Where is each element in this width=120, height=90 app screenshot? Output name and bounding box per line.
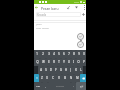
button[interactable]: 5: [56, 50, 61, 58]
button[interactable]: Y: [61, 58, 66, 66]
staticText: 4: [53, 52, 55, 56]
button[interactable]: 4: [51, 50, 56, 58]
button[interactable]: Add recipient: [81, 12, 86, 17]
button[interactable]: .: [71, 82, 76, 90]
staticText: U: [68, 60, 70, 64]
staticText: I: [73, 60, 74, 64]
button[interactable]: T: [56, 58, 61, 66]
button[interactable]: K: [73, 66, 78, 74]
staticText: Kepada: [37, 13, 47, 17]
button[interactable]: F: [53, 66, 58, 74]
staticText: 2: [42, 52, 44, 56]
button[interactable]: M: [74, 74, 80, 82]
button[interactable]: B: [62, 74, 68, 82]
button[interactable]: Z: [39, 74, 44, 82]
button[interactable]: P: [81, 58, 86, 66]
button[interactable]: Shift: [34, 74, 39, 82]
button[interactable]: I: [71, 58, 76, 66]
button[interactable]: Kepada: [36, 12, 81, 17]
staticText: Y: [63, 60, 65, 64]
button[interactable]: Space: [48, 82, 71, 90]
staticText: R: [53, 60, 55, 64]
button[interactable]: 8: [71, 50, 76, 58]
staticText: ,: [45, 85, 46, 88]
button[interactable]: 2: [40, 50, 46, 58]
button[interactable]: D: [48, 66, 53, 74]
staticText: 8: [73, 52, 75, 56]
button[interactable]: A: [38, 66, 43, 74]
staticText: E: [48, 60, 50, 64]
staticText: F: [55, 68, 57, 72]
button[interactable]: Enter: [76, 82, 86, 90]
button[interactable]: N: [68, 74, 74, 82]
staticText: Z: [41, 76, 43, 80]
button[interactable]: Send: [74, 4, 79, 11]
staticText: S: [45, 68, 47, 72]
staticText: 1: [36, 52, 38, 56]
staticText: L: [80, 68, 82, 72]
staticText: M: [76, 76, 79, 80]
button[interactable]: S: [43, 66, 48, 74]
staticText: H: [65, 68, 67, 72]
button[interactable]: 9: [76, 50, 81, 58]
button[interactable]: 1: [34, 50, 40, 58]
staticText: X: [46, 76, 48, 80]
button[interactable]: O: [76, 58, 81, 66]
staticText: Q: [36, 60, 39, 64]
button[interactable]: V: [56, 74, 62, 82]
button[interactable]: ?123: [34, 82, 42, 90]
button[interactable]: ,: [42, 82, 48, 90]
staticText: O: [77, 60, 80, 64]
staticText: C: [52, 76, 54, 80]
button[interactable]: 3: [46, 50, 51, 58]
button[interactable]: X: [44, 74, 50, 82]
button[interactable]: Backspace: [80, 74, 86, 82]
button[interactable]: Scroll down: [77, 41, 84, 48]
button[interactable]: G: [58, 66, 63, 74]
staticText: N: [70, 76, 72, 80]
staticText: .: [73, 85, 74, 88]
staticText: Judul: [36, 23, 42, 26]
button[interactable]: W: [40, 58, 46, 66]
staticText: ?123: [36, 85, 40, 87]
button[interactable]: 0: [81, 50, 86, 58]
button[interactable]: Scroll up: [77, 33, 84, 40]
staticText: 0: [83, 52, 85, 56]
button[interactable]: J: [68, 66, 73, 74]
staticText: T: [58, 60, 60, 64]
staticText: Tulis pesan: [36, 26, 50, 29]
staticText: 3: [48, 52, 50, 56]
staticText: Pesan baru: [41, 6, 59, 10]
staticText: V: [58, 76, 60, 80]
staticText: K: [75, 68, 77, 72]
staticText: A: [40, 68, 42, 72]
button[interactable]: Judul: [34, 23, 86, 29]
staticText: G: [60, 68, 62, 72]
button[interactable]: E: [46, 58, 51, 66]
button[interactable]: Back: [34, 4, 39, 11]
button[interactable]: R: [51, 58, 56, 66]
button[interactable]: L: [78, 66, 83, 74]
staticText: D: [50, 68, 52, 72]
staticText: 9: [78, 52, 80, 56]
staticText: B: [64, 76, 66, 80]
staticText: 6: [63, 52, 65, 56]
button[interactable]: Attach file: [66, 4, 71, 11]
staticText: W: [42, 60, 45, 64]
button[interactable]: C: [50, 74, 56, 82]
button[interactable]: H: [63, 66, 68, 74]
staticText: P: [83, 60, 85, 64]
button[interactable]: 6: [61, 50, 66, 58]
staticText: Indonesia: [56, 85, 64, 87]
button[interactable]: U: [66, 58, 71, 66]
staticText: 5: [58, 52, 60, 56]
button[interactable]: 7: [66, 50, 71, 58]
staticText: 7: [68, 52, 70, 56]
button[interactable]: More options: [82, 4, 86, 11]
button[interactable]: Q: [34, 58, 40, 66]
